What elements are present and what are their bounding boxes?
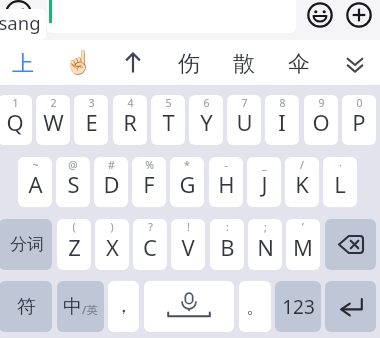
staticText: # [108, 158, 115, 172]
staticText: F [143, 169, 155, 199]
button[interactable]: / [285, 157, 319, 207]
button[interactable]: Voice input [5, 0, 32, 27]
button[interactable]: * [170, 157, 204, 207]
button[interactable]: 7 [227, 95, 261, 145]
button[interactable] [47, 0, 296, 33]
button[interactable]: 伞 [279, 40, 319, 85]
button[interactable]: 6 [189, 95, 223, 145]
button[interactable]: % [132, 157, 166, 207]
staticText: 中 [63, 295, 82, 319]
button[interactable]: 5 [151, 95, 185, 145]
button[interactable]: 符 [0, 281, 52, 332]
staticText: ☝🏻 [64, 49, 93, 76]
button[interactable]: @ [56, 157, 90, 207]
staticText: N [257, 232, 274, 262]
button[interactable]: 。 [239, 281, 271, 332]
button[interactable]: Enter [325, 281, 376, 332]
staticText: /英 [82, 302, 98, 318]
staticText: D [103, 169, 120, 199]
button[interactable]: # [94, 157, 128, 207]
staticText: H [218, 169, 235, 199]
staticText: S [67, 169, 80, 199]
button[interactable]: - [209, 157, 243, 207]
button[interactable]: 3 [74, 95, 108, 145]
staticText: ( [72, 220, 76, 234]
staticText: 9 [318, 96, 325, 110]
staticText: 123 [282, 294, 315, 320]
staticText: B [220, 232, 235, 262]
staticText: · [339, 158, 342, 172]
button[interactable]: ， [108, 281, 139, 332]
button[interactable]: 上 [3, 40, 43, 85]
button[interactable]: 4 [113, 95, 147, 145]
button[interactable]: ☝🏻 [58, 40, 98, 85]
staticText: 1 [12, 96, 19, 110]
staticText: 0 [356, 96, 363, 110]
button[interactable]: 0 [342, 95, 376, 145]
staticText: Q [6, 107, 24, 137]
staticText: 2 [50, 96, 57, 110]
staticText: sang [0, 10, 41, 35]
staticText: 3 [88, 96, 95, 110]
staticText: 符 [17, 295, 36, 319]
staticText: 5 [165, 96, 172, 110]
staticText: 。 [246, 295, 265, 319]
staticText: P [352, 107, 366, 137]
staticText: 散 [233, 50, 255, 78]
staticText: ! [187, 220, 190, 234]
staticText: 上 [12, 50, 34, 78]
button[interactable]: Emoji [307, 2, 333, 28]
staticText: I [278, 107, 286, 137]
staticText: V [181, 232, 195, 262]
staticText: ’ [302, 220, 304, 234]
button[interactable]: ( [57, 219, 91, 270]
staticText: L [334, 169, 346, 199]
staticText: ， [114, 294, 133, 318]
button[interactable] [113, 40, 153, 85]
staticText: R [123, 107, 137, 137]
staticText: 分词 [10, 234, 44, 255]
staticText: ) [110, 220, 114, 234]
button[interactable]: 1 [0, 95, 32, 145]
staticText: X [106, 232, 119, 262]
button[interactable]: 123 [275, 281, 321, 332]
staticText: ~ [32, 158, 39, 172]
button[interactable]: 9 [304, 95, 338, 145]
staticText: 7 [241, 96, 248, 110]
button[interactable]: Add [346, 2, 372, 28]
button[interactable]: ~ [18, 157, 52, 207]
staticText: 4 [127, 96, 134, 110]
button[interactable]: 散 [224, 40, 264, 85]
button[interactable]: ! [171, 219, 205, 270]
staticText: M [293, 232, 313, 262]
button[interactable]: ; [248, 219, 282, 270]
button[interactable]: 2 [36, 95, 70, 145]
staticText: K [295, 169, 309, 199]
staticText: / [300, 158, 304, 172]
button[interactable]: _ [247, 157, 281, 207]
staticText: % [145, 158, 154, 172]
button[interactable]: 8 [265, 95, 299, 145]
button[interactable]: ) [95, 219, 129, 270]
button[interactable]: · [323, 157, 357, 207]
staticText: E [85, 107, 98, 137]
staticText: U [236, 107, 253, 137]
button[interactable]: 伤 [169, 40, 209, 85]
button[interactable]: ’ [286, 219, 320, 270]
staticText: @ [68, 158, 78, 172]
button[interactable]: : [210, 219, 244, 270]
staticText: G [179, 169, 196, 199]
staticText: W [43, 107, 64, 137]
staticText: 8 [279, 96, 286, 110]
button[interactable]: Delete [325, 219, 376, 270]
button[interactable]: Show more candidates [343, 55, 367, 75]
staticText: 伞 [288, 50, 310, 78]
button[interactable]: 分词 [0, 219, 52, 270]
button[interactable]: ? [133, 219, 167, 270]
staticText: J [261, 169, 268, 199]
button[interactable] [0, 9, 46, 40]
button[interactable]: 中 [57, 281, 104, 332]
button[interactable]: Space [144, 281, 234, 332]
staticText: Y [200, 107, 213, 137]
staticText: ? [148, 220, 153, 234]
